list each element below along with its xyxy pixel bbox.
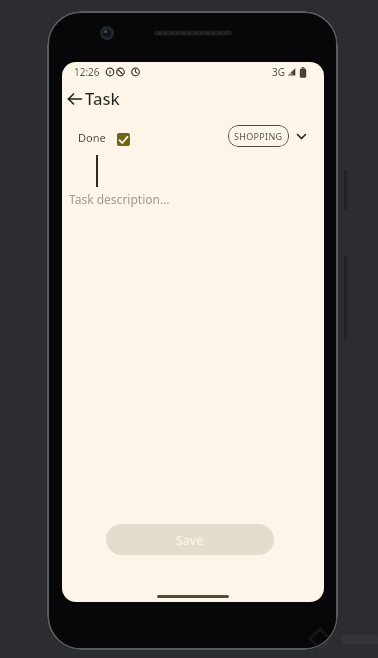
staticText: 3G xyxy=(272,65,285,79)
button[interactable]: Save xyxy=(106,524,274,555)
staticText: 12:26 xyxy=(74,65,100,79)
button[interactable] xyxy=(292,126,310,146)
staticText: Task description... xyxy=(69,191,170,207)
staticText: Task xyxy=(85,87,120,109)
staticText: Save xyxy=(176,532,204,548)
button[interactable] xyxy=(117,133,130,146)
button[interactable] xyxy=(63,88,87,110)
staticText: Done xyxy=(78,130,106,145)
staticText: SHOPPING xyxy=(234,130,283,142)
button[interactable]: SHOPPING xyxy=(228,125,289,147)
button[interactable]: Task description... xyxy=(69,189,170,209)
